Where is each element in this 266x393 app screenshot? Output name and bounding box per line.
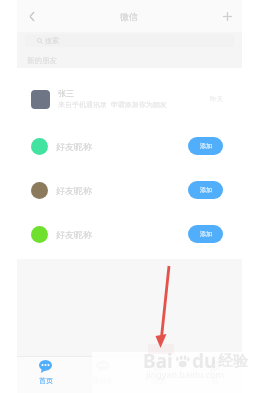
staticText: du <box>192 348 217 374</box>
button[interactable]: 好友昵称 <box>17 168 242 212</box>
button[interactable]: Back <box>21 5 43 27</box>
button[interactable]: 添加 <box>188 181 223 199</box>
staticText: 首页 <box>39 376 53 385</box>
button[interactable]: 好友昵称 <box>17 124 242 168</box>
button[interactable]: 好友昵称 <box>17 212 242 256</box>
button[interactable]: 首页 <box>17 357 74 393</box>
staticText: 昨天 <box>210 95 223 103</box>
staticText: 添加 <box>200 186 212 194</box>
staticText: 好友昵称 <box>56 185 92 196</box>
staticText: 发现 <box>151 376 165 385</box>
staticText: 来自手机通讯录 申请添加你为朋友 <box>58 100 167 110</box>
staticText: 张三 <box>58 88 74 98</box>
button[interactable]: Add <box>216 5 238 27</box>
staticText: 添加 <box>200 142 212 150</box>
staticText: jingyan.baidu.com <box>146 368 224 380</box>
staticText: 好友昵称 <box>56 229 92 240</box>
button[interactable]: 添加 <box>188 225 223 243</box>
staticText: 新的朋友 <box>27 56 57 65</box>
button[interactable]: 我 <box>186 357 242 393</box>
staticText: 经验 <box>218 352 248 371</box>
staticText: 添加 <box>200 230 212 238</box>
button[interactable]: 发现 <box>130 357 186 393</box>
staticText: 搜索 <box>45 36 59 45</box>
staticText: Bai <box>143 348 173 374</box>
staticText: 微信 <box>120 11 138 22</box>
staticText: 好友昵称 <box>56 141 92 152</box>
button[interactable]: 张三 <box>17 77 242 121</box>
button[interactable]: 添加 <box>188 137 223 155</box>
